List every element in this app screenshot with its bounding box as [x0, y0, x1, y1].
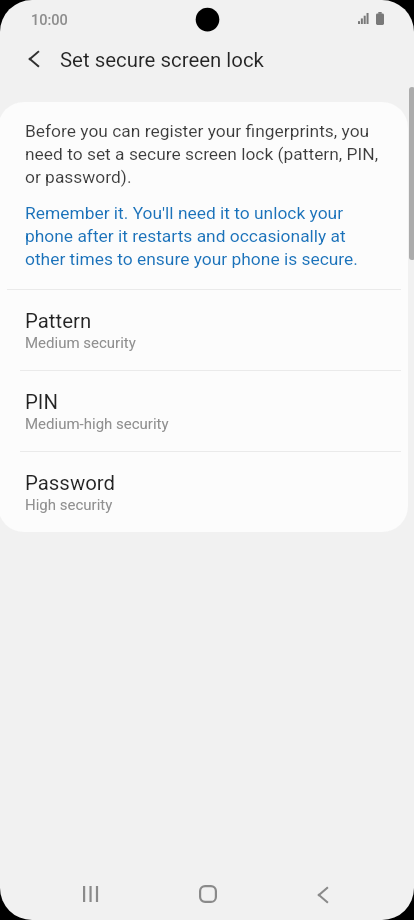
button[interactable]: Home: [180, 866, 236, 920]
button[interactable]: PIN: [0, 371, 408, 451]
staticText: Before you can register your fingerprint…: [25, 119, 379, 188]
staticText: Medium security: [25, 334, 136, 352]
button[interactable]: Back: [295, 867, 351, 920]
button[interactable]: Password: [0, 452, 408, 532]
staticText: Pattern: [25, 309, 92, 333]
button[interactable]: Pattern: [0, 290, 408, 370]
staticText: 10:00: [31, 12, 68, 29]
button[interactable]: Recent apps: [63, 866, 119, 920]
staticText: Set secure screen lock: [60, 48, 264, 72]
button[interactable]: Navigate up: [10, 35, 58, 83]
staticText: Remember it. You'll need it to unlock yo…: [25, 201, 358, 270]
staticText: Password: [25, 471, 116, 495]
staticText: PIN: [25, 390, 58, 414]
staticText: Medium-high security: [25, 415, 169, 433]
staticText: High security: [25, 496, 113, 514]
